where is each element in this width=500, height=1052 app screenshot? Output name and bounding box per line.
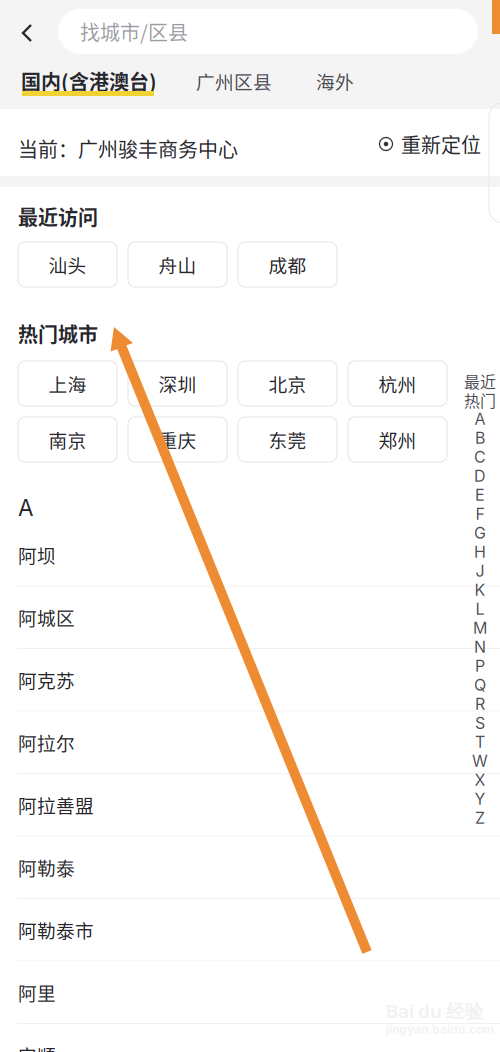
button[interactable]: 阿城区 bbox=[0, 586, 500, 649]
staticText: N bbox=[474, 637, 486, 657]
button[interactable]: 找城市/区县 bbox=[58, 9, 478, 54]
button[interactable]: 深圳 bbox=[128, 361, 227, 406]
staticText: Z bbox=[475, 808, 485, 828]
staticText: 最近访问 bbox=[18, 202, 98, 231]
button[interactable]: Z bbox=[464, 810, 496, 826]
button[interactable]: F bbox=[464, 506, 496, 522]
staticText: 热门 bbox=[464, 388, 496, 412]
staticText: 阿勒泰市 bbox=[18, 916, 94, 943]
button[interactable]: 阿拉尔 bbox=[0, 711, 500, 774]
button[interactable]: J bbox=[464, 563, 496, 579]
button[interactable]: 东莞 bbox=[238, 417, 337, 462]
staticText: 阿勒泰 bbox=[18, 854, 75, 881]
button[interactable]: B bbox=[464, 430, 496, 446]
button[interactable]: A bbox=[464, 411, 496, 427]
staticText: jingyan.baidu.com bbox=[386, 1022, 494, 1036]
button[interactable]: 北京 bbox=[238, 361, 337, 406]
staticText: 安顺 bbox=[18, 1041, 56, 1052]
button[interactable]: 返回 bbox=[12, 14, 42, 54]
button[interactable]: 海外 bbox=[316, 71, 376, 91]
staticText: 重庆 bbox=[158, 426, 196, 453]
button[interactable]: 郑州 bbox=[348, 417, 447, 462]
staticText: 阿坝 bbox=[18, 541, 56, 568]
staticText: 阿城区 bbox=[18, 604, 75, 631]
staticText: J bbox=[475, 561, 484, 581]
button[interactable]: N bbox=[464, 639, 496, 655]
staticText: 最近 bbox=[464, 369, 496, 393]
staticText: 杭州 bbox=[378, 370, 416, 397]
staticText: Bai du 经验 bbox=[386, 1000, 484, 1024]
staticText: 重新定位 bbox=[401, 129, 481, 158]
button[interactable]: 阿勒泰市 bbox=[0, 899, 500, 961]
staticText: 上海 bbox=[48, 370, 86, 397]
button[interactable]: 安顺 bbox=[0, 1024, 500, 1052]
staticText: 阿里 bbox=[18, 979, 56, 1006]
staticText: D bbox=[474, 466, 486, 486]
staticText: A bbox=[18, 494, 33, 521]
staticText: 舟山 bbox=[158, 251, 196, 278]
button[interactable]: 上海 bbox=[18, 361, 117, 406]
button[interactable]: G bbox=[464, 525, 496, 541]
staticText: 阿拉善盟 bbox=[18, 791, 94, 818]
staticText: 国内(含港澳台) bbox=[21, 66, 157, 95]
staticText: R bbox=[475, 694, 485, 714]
button[interactable]: X bbox=[464, 772, 496, 788]
staticText: M bbox=[473, 618, 487, 638]
button[interactable]: 成都 bbox=[238, 242, 337, 287]
button[interactable]: P bbox=[464, 658, 496, 674]
button[interactable]: 阿勒泰 bbox=[0, 836, 500, 899]
staticText: E bbox=[475, 485, 485, 505]
button[interactable]: L bbox=[464, 601, 496, 617]
button[interactable]: S bbox=[464, 715, 496, 731]
button[interactable]: 阿拉善盟 bbox=[0, 774, 500, 836]
button[interactable]: 国内(含港澳台) bbox=[21, 70, 201, 92]
button[interactable]: 阿里 bbox=[0, 961, 500, 1024]
button[interactable]: 广州区县 bbox=[196, 71, 286, 91]
staticText: A bbox=[474, 409, 485, 429]
staticText: 广州区县 bbox=[196, 67, 272, 94]
staticText: 北京 bbox=[268, 370, 306, 397]
staticText: 找城市/区县 bbox=[80, 17, 188, 46]
button[interactable]: 汕头 bbox=[18, 242, 117, 287]
staticText: 热门城市 bbox=[18, 319, 98, 348]
button[interactable]: H bbox=[464, 544, 496, 560]
staticText: G bbox=[474, 523, 486, 543]
button[interactable]: D bbox=[464, 468, 496, 484]
staticText: 当前：广州骏丰商务中心 bbox=[18, 134, 238, 163]
button[interactable]: E bbox=[464, 487, 496, 503]
button[interactable]: Q bbox=[464, 677, 496, 693]
staticText: F bbox=[475, 504, 484, 524]
button[interactable]: 阿克苏 bbox=[0, 649, 500, 711]
button[interactable]: 最近 bbox=[464, 373, 496, 389]
staticText: C bbox=[474, 447, 486, 467]
button[interactable]: W bbox=[464, 753, 496, 769]
button[interactable]: R bbox=[464, 696, 496, 712]
button[interactable]: 重庆 bbox=[128, 417, 227, 462]
staticText: 东莞 bbox=[268, 426, 306, 453]
button[interactable]: 阿坝 bbox=[0, 524, 500, 586]
button[interactable]: Y bbox=[464, 791, 496, 807]
staticText: 成都 bbox=[268, 251, 306, 278]
staticText: Y bbox=[474, 789, 485, 809]
staticText: W bbox=[472, 751, 488, 771]
button[interactable]: T bbox=[464, 734, 496, 750]
staticText: 南京 bbox=[48, 426, 86, 453]
staticText: Q bbox=[474, 675, 486, 695]
staticText: 阿克苏 bbox=[18, 666, 75, 693]
staticText: K bbox=[474, 580, 485, 600]
button[interactable]: 舟山 bbox=[128, 242, 227, 287]
button[interactable]: 杭州 bbox=[348, 361, 447, 406]
button[interactable]: C bbox=[464, 449, 496, 465]
staticText: 阿拉尔 bbox=[18, 729, 75, 756]
staticText: 郑州 bbox=[378, 426, 416, 453]
button[interactable]: 热门 bbox=[464, 392, 496, 408]
staticText: X bbox=[474, 770, 485, 790]
staticText: B bbox=[475, 428, 485, 448]
staticText: 海外 bbox=[316, 67, 354, 94]
button[interactable]: M bbox=[464, 620, 496, 636]
staticText: 深圳 bbox=[158, 370, 196, 397]
staticText: P bbox=[475, 656, 485, 676]
button[interactable]: K bbox=[464, 582, 496, 598]
button[interactable]: 南京 bbox=[18, 417, 117, 462]
button[interactable]: 重新定位 bbox=[378, 132, 488, 156]
